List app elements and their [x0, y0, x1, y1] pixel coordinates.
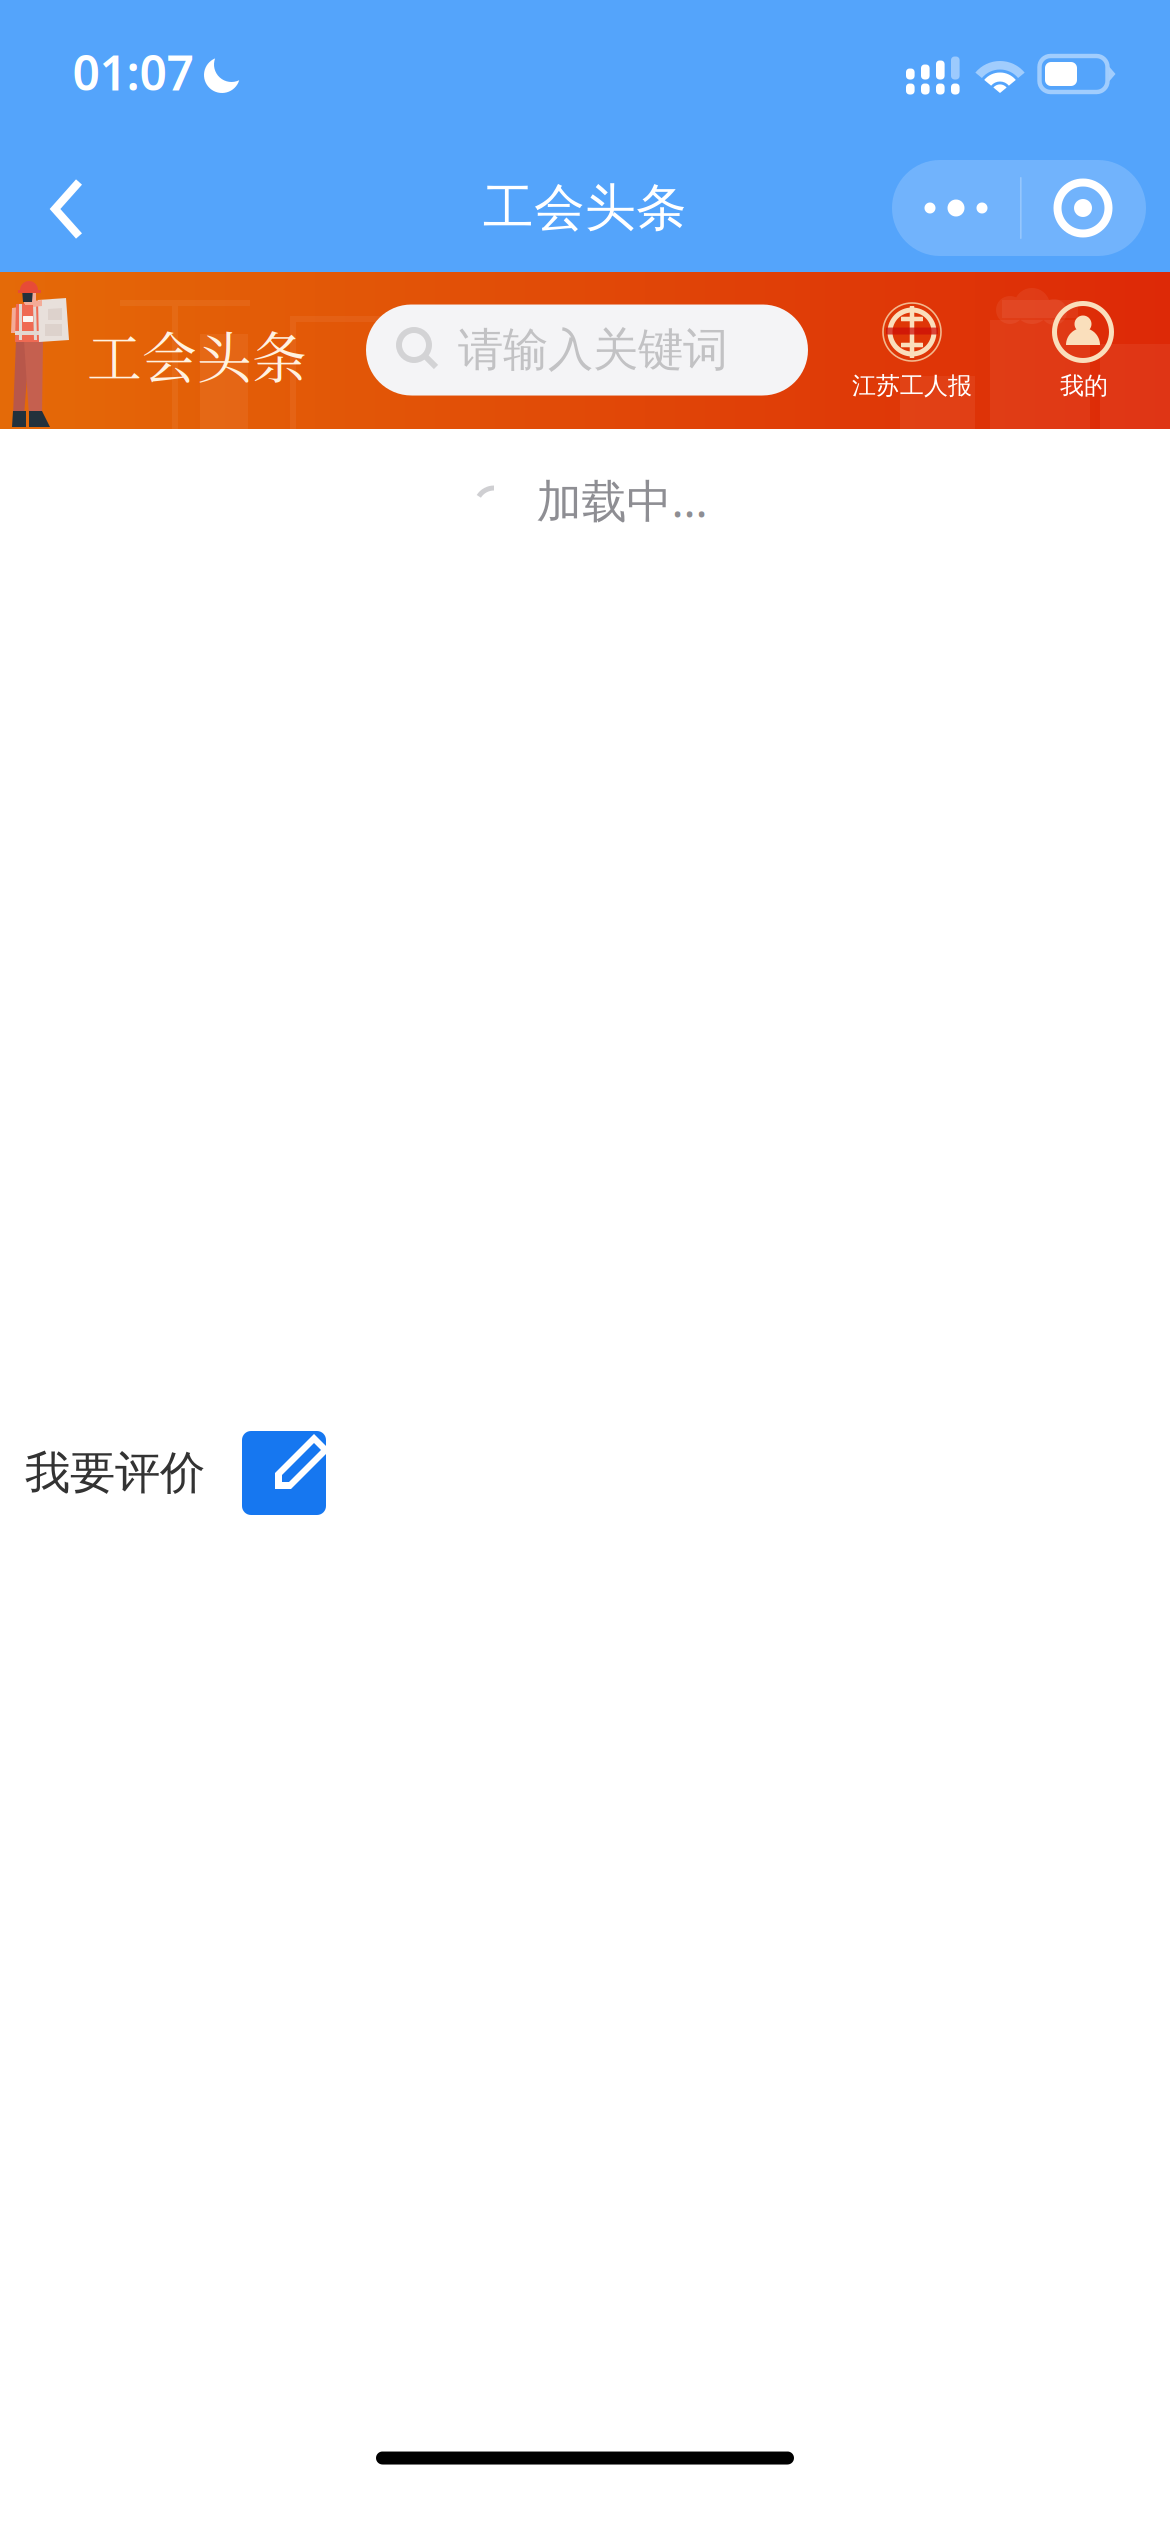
staticText: 加载中... — [536, 470, 707, 530]
button[interactable]: Close mini program — [1020, 160, 1146, 256]
button[interactable]: More options — [892, 160, 1020, 256]
button[interactable]: 江苏工人报 — [850, 290, 974, 424]
staticText: 工会头条 — [483, 177, 687, 239]
staticText: 我的 — [1060, 371, 1108, 400]
staticText: 我要评价 — [25, 1445, 205, 1501]
staticText: 请输入关键词 — [458, 322, 728, 378]
staticText: 01:07 — [72, 40, 193, 104]
button[interactable]: Back — [17, 150, 117, 268]
button[interactable]: 我的 — [1036, 290, 1130, 424]
button[interactable]: Search — [366, 304, 808, 395]
staticText: 工会头条 — [87, 315, 307, 393]
staticText: 江苏工人报 — [852, 371, 972, 400]
button[interactable]: 我要评价 — [0, 1407, 386, 1539]
